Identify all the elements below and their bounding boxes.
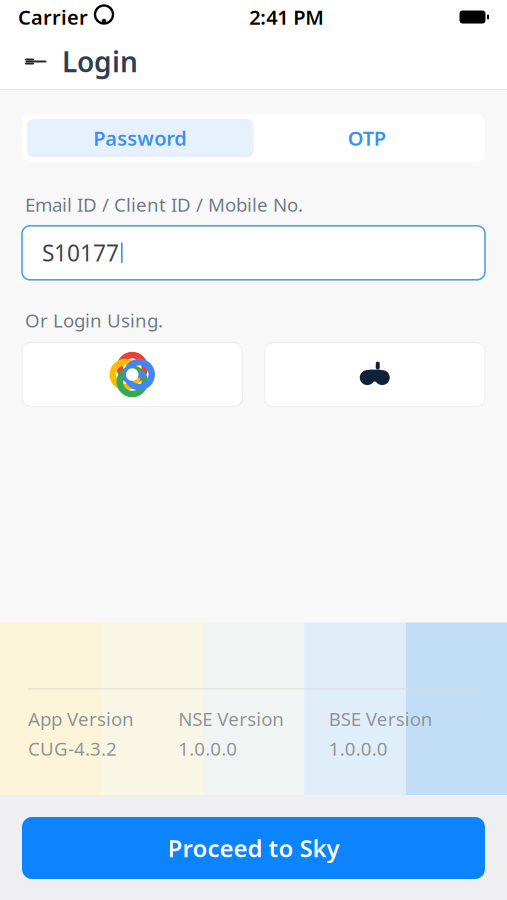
staticText: NSE Version <box>178 706 284 731</box>
staticText: Proceed to Sky <box>167 832 339 864</box>
staticText: Or Login Using. <box>25 308 163 333</box>
staticText: App Version <box>28 706 134 731</box>
staticText: Email ID / Client ID / Mobile No. <box>25 192 303 217</box>
button[interactable]: Sign in with Apple <box>264 343 485 407</box>
staticText: 1.0.0.0 <box>178 736 237 761</box>
staticText: Carrier <box>18 4 88 30</box>
staticText: OTP <box>348 125 386 151</box>
staticText: CUG-4.3.2 <box>28 736 117 761</box>
staticText: BSE Version <box>329 706 433 731</box>
button[interactable]: Back <box>14 39 58 83</box>
staticText: 1.0.0.0 <box>329 736 388 761</box>
staticText: 2:41 PM <box>249 4 324 30</box>
button[interactable]: OTP <box>253 119 480 157</box>
button[interactable]: Proceed to Sky <box>22 817 485 879</box>
staticText: Login <box>62 43 138 80</box>
staticText: Password <box>93 125 187 151</box>
button[interactable]: Password <box>27 119 253 157</box>
button[interactable]: Sign in with Google <box>22 343 242 407</box>
staticText: S10177 <box>42 238 119 268</box>
